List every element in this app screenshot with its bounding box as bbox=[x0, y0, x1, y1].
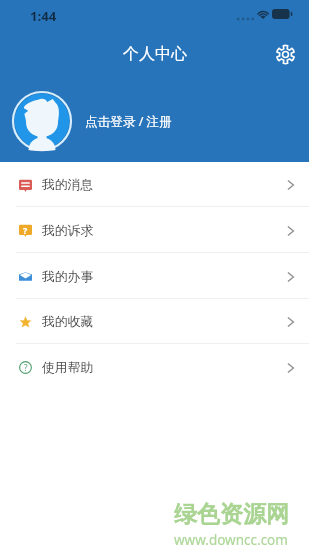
staticText: 我的诉求 bbox=[42, 223, 94, 239]
staticText: 使用帮助 bbox=[42, 360, 94, 376]
staticText: ? bbox=[24, 362, 28, 373]
button[interactable]: 我的收藏 bbox=[0, 299, 309, 343]
staticText: 我的办事 bbox=[42, 269, 94, 285]
staticText: 个人中心 bbox=[123, 44, 187, 64]
button[interactable]: ? bbox=[0, 207, 309, 252]
button[interactable]: 我的办事 bbox=[0, 253, 309, 298]
staticText: 1:44 bbox=[30, 7, 57, 25]
button[interactable]: 点击登录 / 注册 bbox=[0, 82, 309, 160]
staticText: 绿色资源网 bbox=[174, 500, 289, 529]
staticText: 我的收藏 bbox=[42, 314, 94, 330]
staticText: 点击登录 / 注册 bbox=[85, 113, 172, 130]
button[interactable]: ? bbox=[0, 344, 309, 389]
button[interactable]: Settings bbox=[270, 39, 300, 69]
staticText: 我的消息 bbox=[42, 177, 94, 193]
staticText: www.downcc.com bbox=[174, 531, 288, 549]
button[interactable]: 我的消息 bbox=[0, 162, 309, 206]
staticText: ? bbox=[23, 224, 28, 236]
